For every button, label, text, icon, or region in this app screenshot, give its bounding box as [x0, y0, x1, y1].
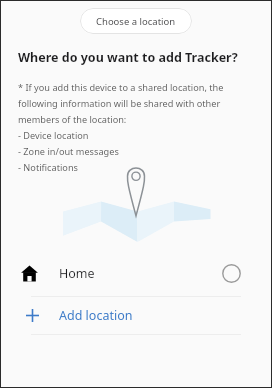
staticText: - Device location: [18, 129, 89, 142]
button[interactable]: Add location: [1, 297, 271, 334]
staticText: Add location: [59, 307, 133, 324]
button[interactable]: Choose a location: [80, 8, 192, 34]
staticText: Choose a location: [96, 15, 176, 28]
staticText: - Notifications: [18, 161, 78, 174]
staticText: members of the location:: [18, 113, 127, 126]
staticText: following information will be shared wit…: [18, 97, 221, 110]
staticText: - Zone in/out messages: [18, 145, 119, 158]
staticText: Home: [59, 265, 95, 282]
staticText: Where do you want to add Tracker?: [18, 49, 238, 66]
staticText: * If you add this device to a shared loc…: [18, 81, 224, 94]
button[interactable]: Home: [1, 253, 271, 293]
other: Home: [19, 263, 40, 284]
